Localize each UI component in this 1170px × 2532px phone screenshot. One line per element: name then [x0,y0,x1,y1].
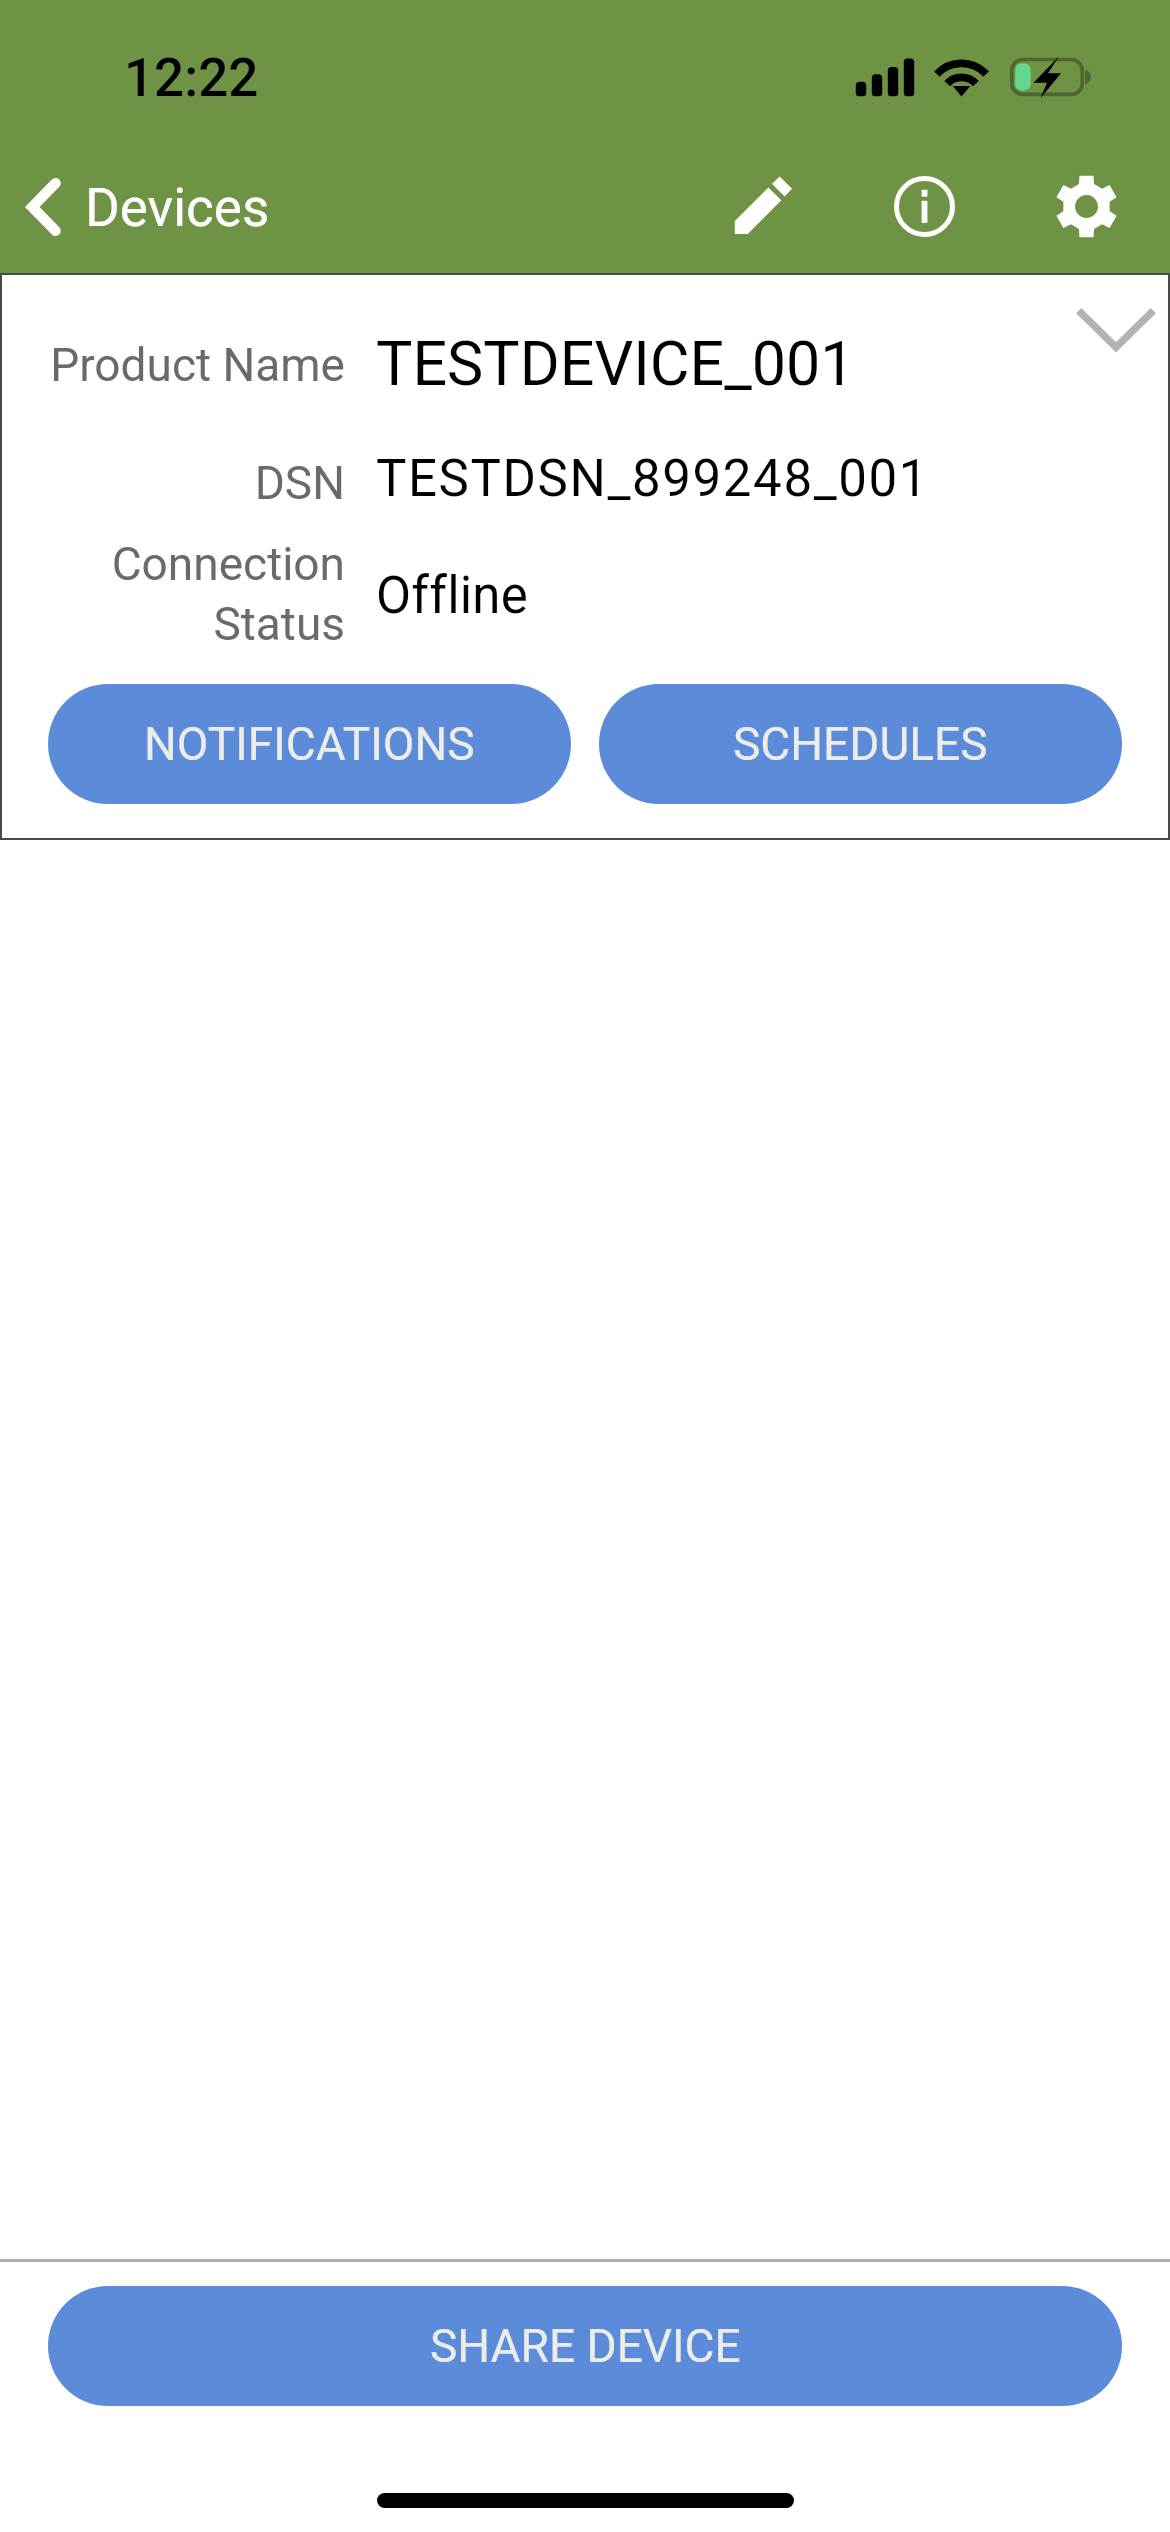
button[interactable]: NOTIFICATIONS [48,684,571,804]
staticText: NOTIFICATIONS [144,717,475,771]
staticText: DSN [0,456,345,510]
staticText: 12:22 [124,47,259,109]
button[interactable]: Device information [854,136,994,276]
staticText: Product Name [0,338,345,392]
button[interactable]: Settings [1016,136,1156,276]
button[interactable]: Devices [8,164,288,250]
staticText: TESTDEVICE_001 [376,328,855,399]
button[interactable]: Edit device name [691,137,831,277]
staticText: TESTDSN_899248_001 [376,449,930,509]
staticText: Devices [85,177,270,239]
staticText: SHARE DEVICE [430,2319,741,2373]
staticText: Connection Status [0,537,345,652]
button[interactable]: SCHEDULES [599,684,1122,804]
staticText: Offline [376,566,528,626]
staticText: SCHEDULES [733,717,988,771]
button[interactable]: Collapse section [1040,273,1170,383]
button[interactable]: SHARE DEVICE [48,2286,1122,2406]
